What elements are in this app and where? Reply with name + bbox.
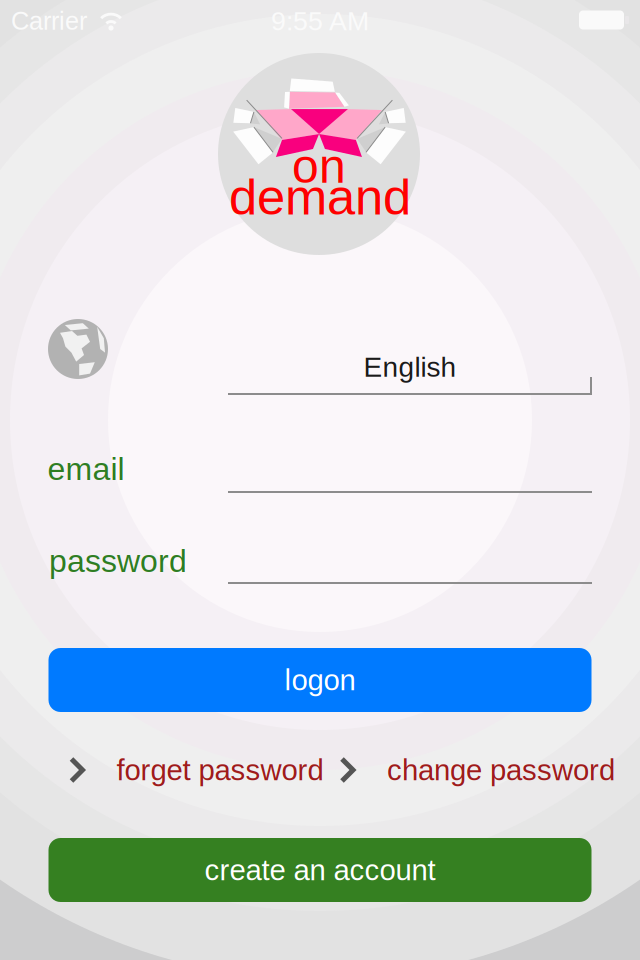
staticText: demand: [229, 169, 411, 225]
staticText: change password: [387, 754, 615, 786]
button[interactable]: change password: [340, 748, 613, 792]
staticText: 9:55 AM: [271, 6, 369, 36]
staticText: on: [292, 139, 346, 193]
staticText: English: [363, 351, 456, 383]
staticText: logon: [284, 664, 355, 696]
button[interactable]: forget password: [69, 748, 322, 792]
button[interactable]: create an account: [48, 838, 591, 902]
staticText: create an account: [204, 854, 435, 886]
staticText: Carrier: [11, 7, 87, 35]
button[interactable]: logon: [48, 648, 591, 712]
staticText: email: [47, 451, 124, 487]
staticText: forget password: [116, 754, 323, 786]
staticText: password: [49, 543, 187, 579]
